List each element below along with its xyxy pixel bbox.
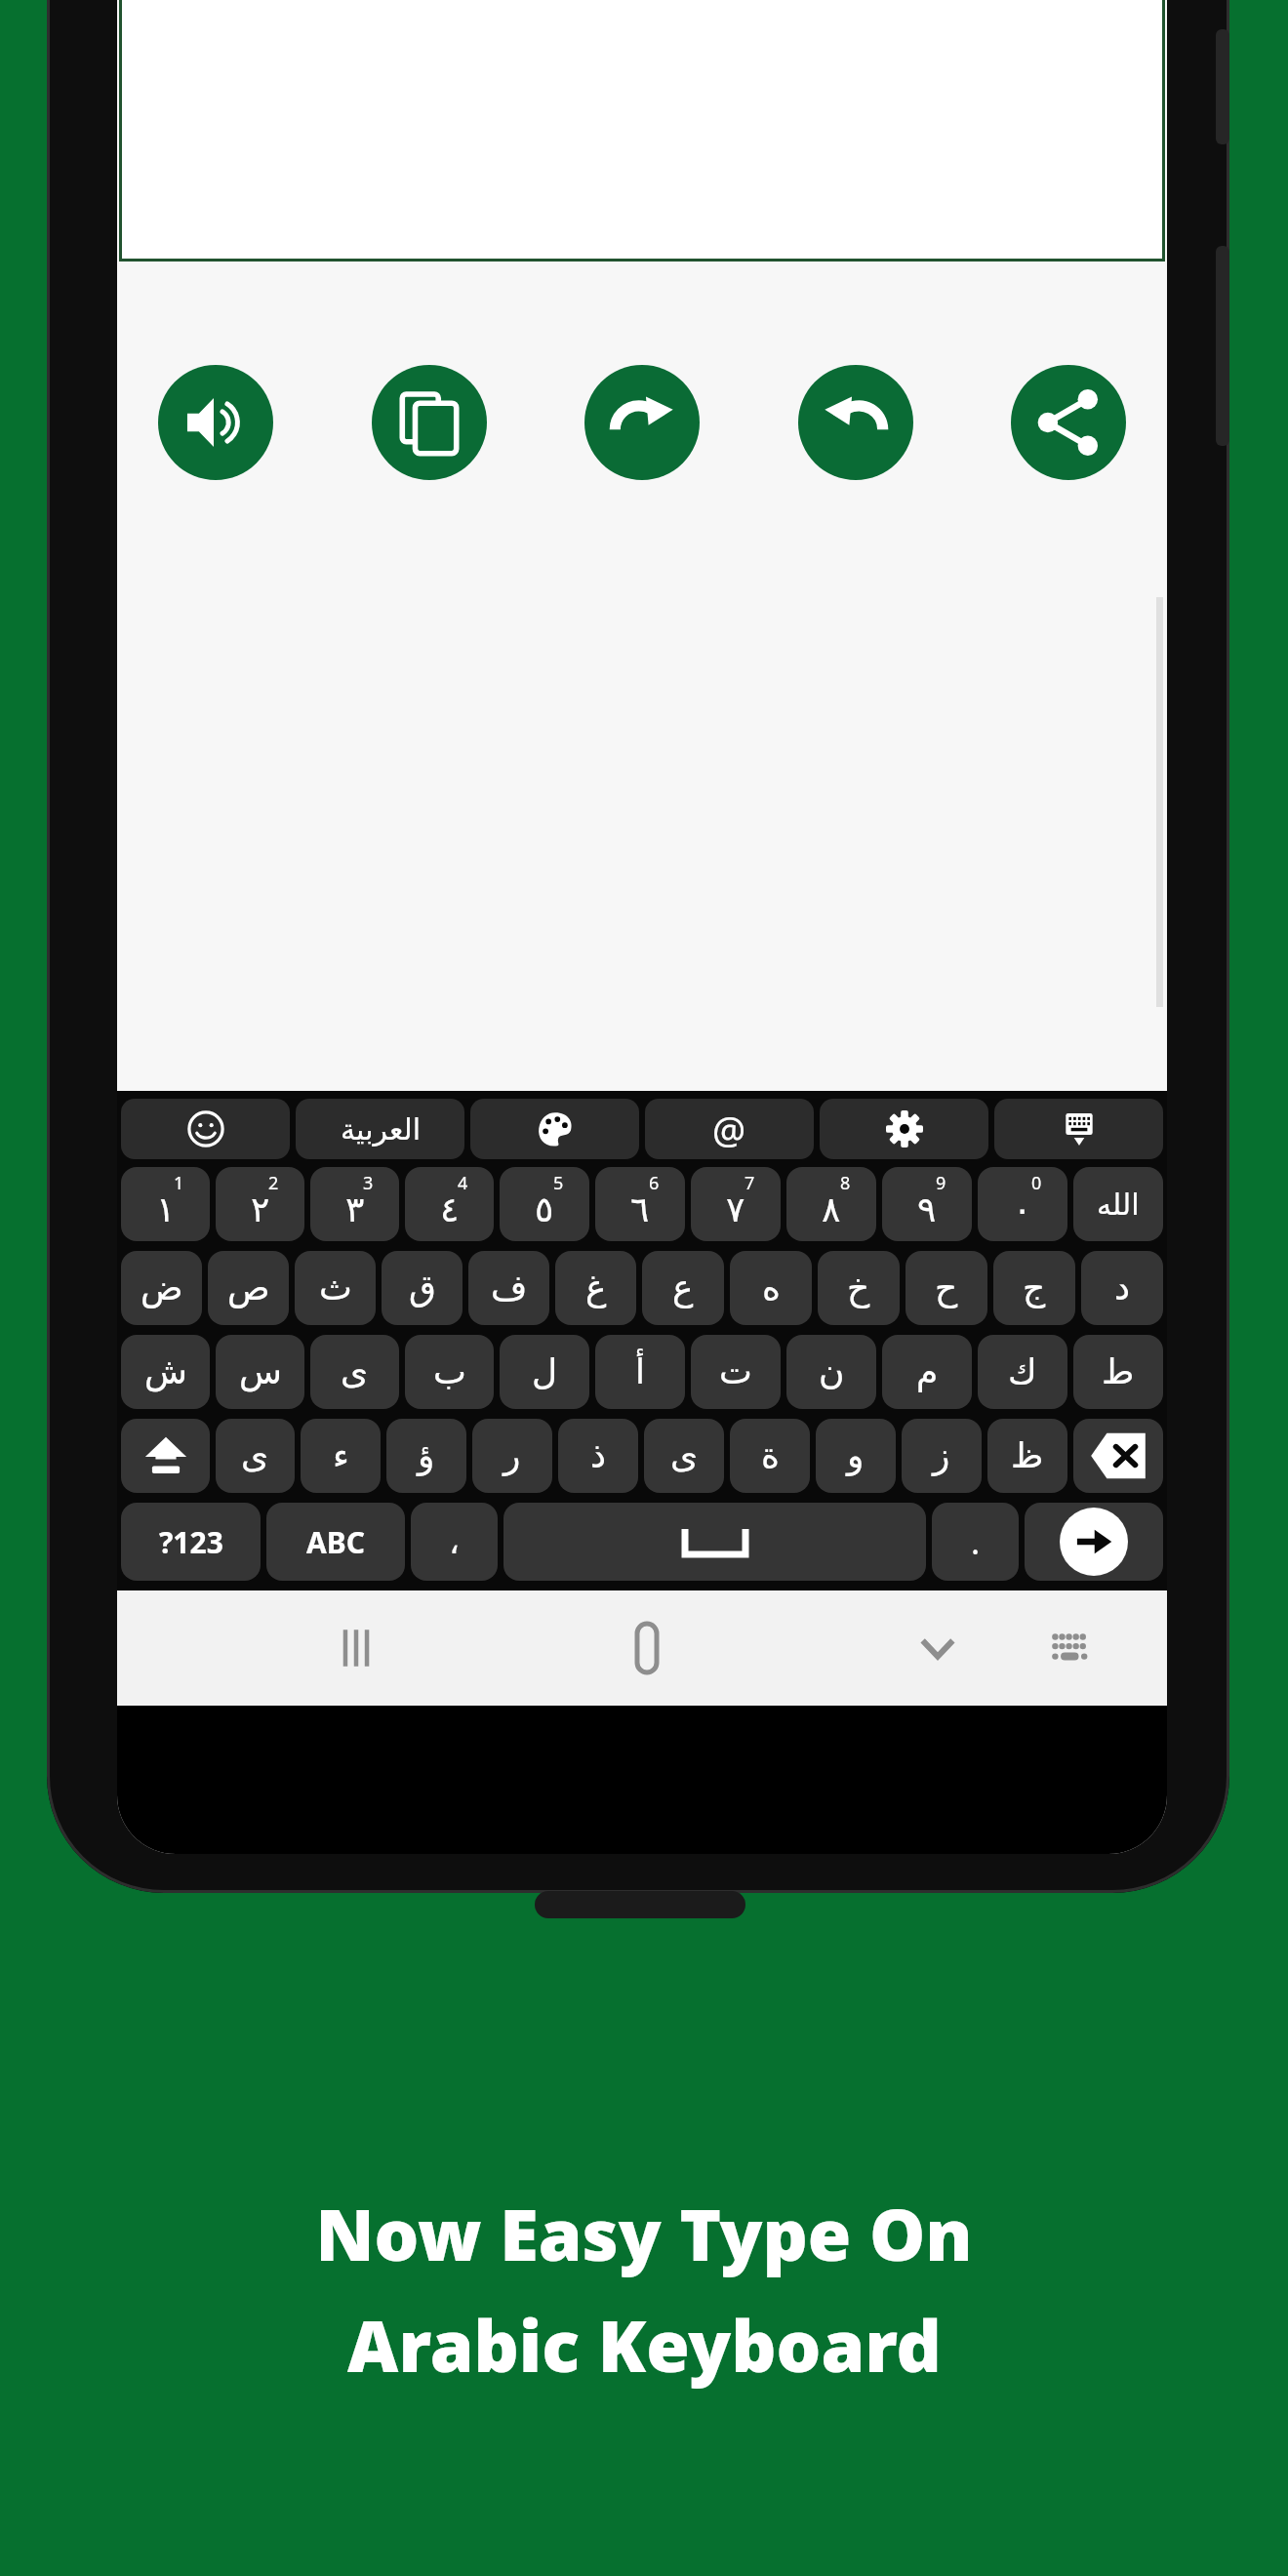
button[interactable]: ه xyxy=(730,1251,812,1325)
staticText: ك xyxy=(1008,1351,1037,1392)
staticText: ٣ xyxy=(345,1189,365,1230)
button[interactable]: د xyxy=(1081,1251,1163,1325)
staticText: ?123 xyxy=(159,1522,223,1562)
button[interactable]: ر xyxy=(472,1419,552,1493)
staticText: ب xyxy=(433,1351,466,1392)
button[interactable]: Speak xyxy=(158,365,273,480)
staticText: الله xyxy=(1097,1187,1140,1222)
button[interactable]: Backspace xyxy=(1073,1419,1163,1493)
button[interactable]: ط xyxy=(1073,1335,1163,1409)
staticText: ذ xyxy=(590,1435,607,1476)
button[interactable]: 7 xyxy=(691,1167,781,1241)
button[interactable]: م xyxy=(882,1335,972,1409)
button[interactable]: ن xyxy=(786,1335,876,1409)
button[interactable]: Redo xyxy=(584,365,700,480)
staticText: 9 xyxy=(936,1171,946,1195)
button[interactable]: ، xyxy=(411,1503,498,1581)
button[interactable]: Theme xyxy=(470,1099,639,1159)
button[interactable]: Share xyxy=(1011,365,1126,480)
button[interactable]: 9 xyxy=(882,1167,972,1241)
staticText: ظ xyxy=(1011,1435,1044,1476)
staticText: و xyxy=(847,1435,865,1476)
button[interactable]: ك xyxy=(978,1335,1067,1409)
button[interactable]: ى xyxy=(644,1419,724,1493)
staticText: ٨ xyxy=(822,1189,841,1230)
button[interactable]: ح xyxy=(906,1251,987,1325)
button[interactable]: ج xyxy=(993,1251,1075,1325)
button[interactable]: Recents xyxy=(312,1604,400,1692)
button[interactable]: 3 xyxy=(310,1167,399,1241)
button[interactable]: ت xyxy=(691,1335,781,1409)
staticText: ج xyxy=(1023,1268,1046,1308)
staticText: ر xyxy=(503,1435,521,1476)
staticText: ف xyxy=(491,1268,528,1308)
button[interactable]: ى xyxy=(216,1419,295,1493)
button[interactable]: Emoji xyxy=(121,1099,290,1159)
staticText: ث xyxy=(319,1268,352,1308)
button[interactable]: Home xyxy=(603,1604,691,1692)
button[interactable]: 1 xyxy=(121,1167,210,1241)
button[interactable]: س xyxy=(216,1335,304,1409)
button[interactable]: و xyxy=(816,1419,896,1493)
staticText: ق xyxy=(409,1268,436,1308)
staticText: أ xyxy=(635,1351,646,1392)
button[interactable]: 8 xyxy=(786,1167,876,1241)
button[interactable]: Copy xyxy=(372,365,487,480)
button[interactable]: 6 xyxy=(595,1167,685,1241)
button[interactable]: ABC xyxy=(266,1503,405,1581)
button[interactable]: الله xyxy=(1073,1167,1163,1241)
staticText: ز xyxy=(933,1435,950,1476)
staticText: 2 xyxy=(268,1171,279,1195)
button[interactable]: ?123 xyxy=(121,1503,261,1581)
button[interactable]: ق xyxy=(382,1251,463,1325)
staticText: ض xyxy=(141,1268,183,1308)
staticText: ٧ xyxy=(726,1189,745,1230)
button[interactable]: ؤ xyxy=(386,1419,466,1493)
button[interactable]: @ xyxy=(645,1099,814,1159)
staticText: 8 xyxy=(840,1171,851,1195)
button[interactable]: . xyxy=(932,1503,1019,1581)
button[interactable]: ض xyxy=(121,1251,202,1325)
button[interactable]: العربية xyxy=(296,1099,464,1159)
button[interactable]: Shift xyxy=(121,1419,210,1493)
button[interactable]: ة xyxy=(730,1419,810,1493)
button[interactable]: Settings xyxy=(820,1099,988,1159)
button[interactable]: Hide keyboard xyxy=(894,1604,982,1692)
staticText: ى xyxy=(241,1435,269,1476)
staticText: ABC xyxy=(306,1522,365,1562)
button[interactable]: ب xyxy=(405,1335,494,1409)
staticText: خ xyxy=(847,1268,870,1308)
button[interactable]: ذ xyxy=(558,1419,638,1493)
button[interactable]: ف xyxy=(468,1251,549,1325)
staticText: ١ xyxy=(156,1189,176,1230)
staticText: ٤ xyxy=(440,1189,460,1230)
button[interactable]: ث xyxy=(295,1251,376,1325)
staticText: 6 xyxy=(649,1171,660,1195)
staticText: م xyxy=(916,1351,939,1392)
button[interactable]: Space xyxy=(503,1503,926,1581)
button[interactable]: ع xyxy=(642,1251,724,1325)
button[interactable]: ظ xyxy=(987,1419,1067,1493)
button[interactable]: ى xyxy=(310,1335,399,1409)
button[interactable]: خ xyxy=(818,1251,900,1325)
staticText: ن xyxy=(819,1351,845,1392)
button[interactable]: ء xyxy=(301,1419,381,1493)
button[interactable]: غ xyxy=(555,1251,636,1325)
button[interactable]: 5 xyxy=(500,1167,589,1241)
button[interactable]: ز xyxy=(902,1419,982,1493)
button[interactable]: 4 xyxy=(405,1167,494,1241)
button[interactable]: العربى xyxy=(119,0,1165,262)
button[interactable]: 2 xyxy=(216,1167,304,1241)
staticText: ة xyxy=(761,1435,780,1476)
staticText: ٥ xyxy=(535,1189,554,1230)
staticText: ى xyxy=(670,1435,699,1476)
button[interactable]: ص xyxy=(208,1251,289,1325)
button[interactable]: Enter xyxy=(1025,1503,1163,1581)
button[interactable]: ل xyxy=(500,1335,589,1409)
button[interactable]: Keyboard layout xyxy=(1026,1604,1114,1692)
button[interactable]: 0 xyxy=(978,1167,1067,1241)
button[interactable]: Undo xyxy=(798,365,913,480)
button[interactable]: ش xyxy=(121,1335,210,1409)
button[interactable]: Resize keyboard xyxy=(994,1099,1163,1159)
button[interactable]: أ xyxy=(595,1335,685,1409)
